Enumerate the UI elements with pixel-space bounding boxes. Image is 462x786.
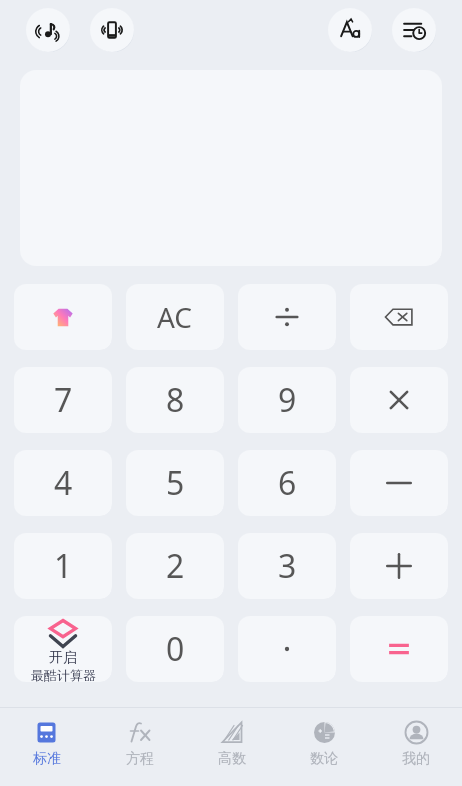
button[interactable]: AC — [126, 284, 224, 350]
button[interactable]: 高数 — [186, 708, 278, 786]
button[interactable]: 5 — [126, 450, 224, 516]
button[interactable]: 6 — [238, 450, 336, 516]
button[interactable]: Theme — [14, 284, 112, 350]
button[interactable]: 7 — [14, 367, 112, 433]
staticText: 2 — [166, 544, 185, 588]
button[interactable]: 数论 — [278, 708, 370, 786]
button[interactable]: Advertisement — [14, 616, 112, 682]
button[interactable]: Backspace — [350, 284, 448, 350]
button[interactable]: 9 — [238, 367, 336, 433]
button[interactable]: Divide — [238, 284, 336, 350]
staticText: 3 — [278, 544, 297, 588]
button[interactable]: Plus — [350, 533, 448, 599]
button[interactable]: 方程 — [93, 708, 186, 786]
button[interactable]: Decimal point — [238, 616, 336, 682]
button[interactable]: Font size — [328, 8, 372, 52]
button[interactable]: 4 — [14, 450, 112, 516]
staticText: 最酷计算器 — [31, 667, 96, 682]
staticText: 5 — [166, 461, 185, 505]
staticText: 标准 — [33, 750, 61, 768]
staticText: 方程 — [126, 750, 154, 768]
staticText: 6 — [278, 461, 297, 505]
staticText: 开启 — [49, 649, 77, 667]
staticText: 我的 — [402, 750, 430, 768]
button[interactable]: Multiply — [350, 367, 448, 433]
staticText: 0 — [166, 627, 185, 671]
button[interactable]: 2 — [126, 533, 224, 599]
button[interactable]: 3 — [238, 533, 336, 599]
staticText: 9 — [278, 378, 297, 422]
button[interactable]: Equals — [350, 616, 448, 682]
staticText: 7 — [54, 378, 73, 422]
staticText: 4 — [54, 461, 73, 505]
button[interactable]: Vibration — [90, 8, 134, 52]
button[interactable]: 1 — [14, 533, 112, 599]
button[interactable]: 0 — [126, 616, 224, 682]
button[interactable]: Minus — [350, 450, 448, 516]
button[interactable]: 8 — [126, 367, 224, 433]
staticText: AC — [157, 298, 193, 336]
button[interactable]: Sound — [26, 8, 70, 52]
button[interactable]: 我的 — [370, 708, 462, 786]
staticText: 8 — [166, 378, 185, 422]
staticText: 高数 — [218, 750, 246, 768]
staticText: 1 — [54, 544, 73, 588]
button[interactable]: History — [392, 8, 436, 52]
button[interactable]: 标准 — [0, 708, 93, 786]
staticText: 数论 — [310, 750, 338, 768]
